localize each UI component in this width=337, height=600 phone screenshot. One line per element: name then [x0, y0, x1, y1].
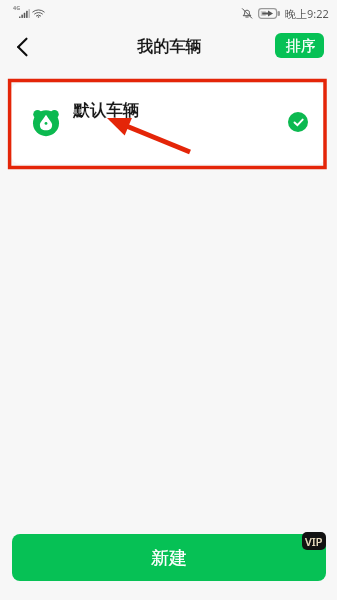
staticText: 晚上9:22 [285, 6, 329, 21]
button[interactable]: 新建 [12, 534, 326, 581]
staticText: VIP [305, 534, 323, 549]
staticText: 4G [13, 4, 21, 11]
staticText: 我的车辆 [137, 37, 201, 57]
staticText: 新建 [151, 547, 187, 570]
button[interactable]: Back [8, 33, 36, 61]
button[interactable]: Selected default vehicle [288, 112, 308, 132]
staticText: 排序 [286, 37, 316, 56]
staticText: 默认车辆 [73, 100, 139, 121]
button[interactable]: 默认车辆 [11, 83, 326, 164]
button[interactable]: 排序 [275, 33, 324, 58]
